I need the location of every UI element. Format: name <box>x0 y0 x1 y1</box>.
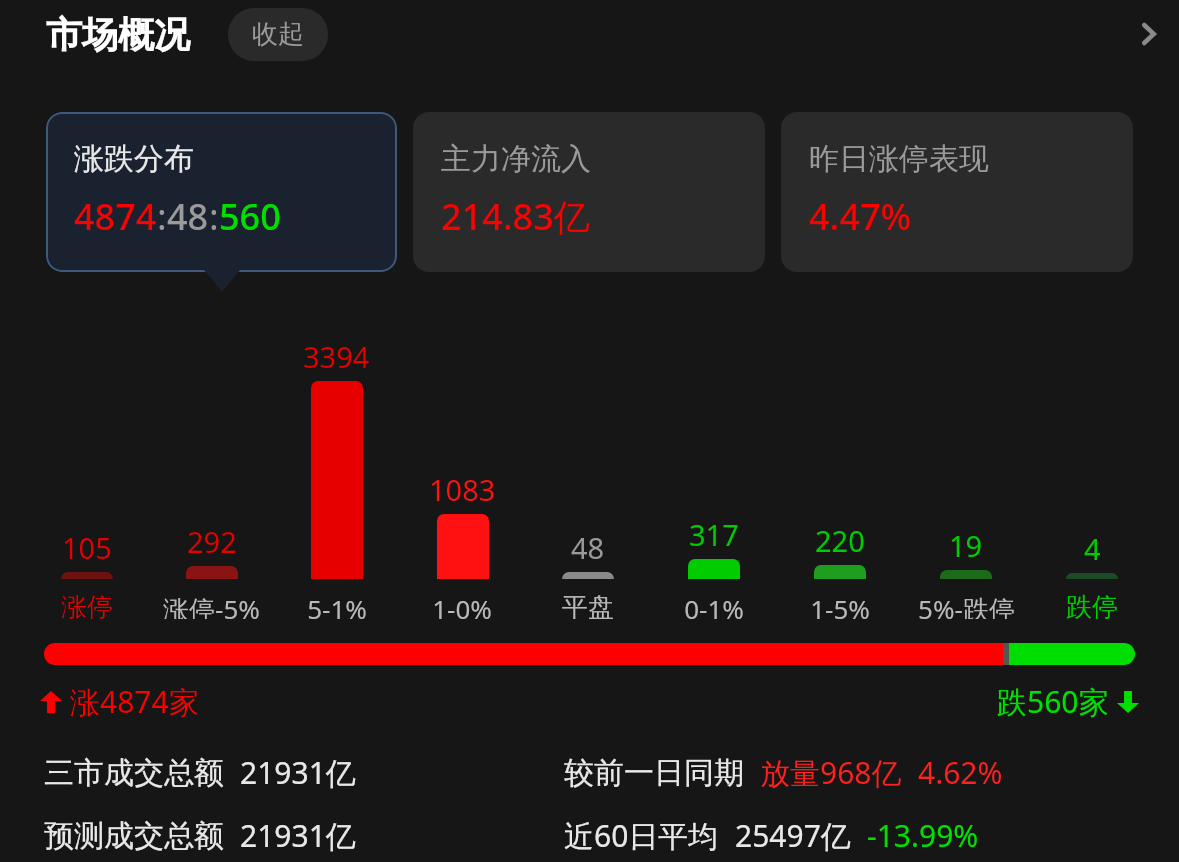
staticText: 近60日平均 <box>564 815 719 856</box>
staticText: 主力净流入 <box>441 140 591 178</box>
staticText: 平盘 <box>562 591 614 619</box>
staticText: 5%-跌停 <box>918 591 1015 619</box>
button[interactable]: 昨日涨停表现 <box>781 112 1133 272</box>
button[interactable]: 收起 <box>228 8 328 61</box>
staticText: 21931亿 <box>240 752 356 793</box>
staticText: 1-5% <box>810 591 870 619</box>
button[interactable]: 涨跌分布 <box>46 112 397 272</box>
staticText: : <box>209 192 219 241</box>
staticText: 4.62% <box>918 752 1003 793</box>
staticText: 市场概况 <box>46 12 190 57</box>
staticText: 4.47% <box>809 192 912 241</box>
staticText: 317 <box>689 515 739 554</box>
staticText: 预测成交总额 <box>44 817 224 855</box>
staticText: 4874 <box>74 192 157 241</box>
staticText: 三市成交总额 <box>44 754 224 792</box>
staticText: 跌560家 <box>997 681 1109 722</box>
staticText: 涨停-5% <box>163 591 260 619</box>
staticText: 1083 <box>429 470 496 509</box>
staticText: 19 <box>949 526 983 565</box>
staticText: 涨停 <box>61 591 113 619</box>
staticText: 收起 <box>252 18 304 51</box>
staticText: 5-1% <box>307 591 367 619</box>
staticText: 涨4874家 <box>70 681 199 722</box>
staticText: 560 <box>219 192 281 241</box>
staticText: 4 <box>1084 529 1101 568</box>
staticText: 48 <box>571 528 605 567</box>
staticText: 涨跌分布 <box>74 140 194 178</box>
staticText: 较前一日同期 <box>564 754 744 792</box>
staticText: 21931亿 <box>240 815 356 856</box>
staticText: 放量968亿 <box>760 752 902 793</box>
staticText: : <box>157 192 167 241</box>
staticText: -13.99% <box>867 815 979 856</box>
button[interactable]: More <box>1119 4 1179 64</box>
staticText: 220 <box>815 521 865 560</box>
staticText: 跌停 <box>1066 591 1118 619</box>
staticText: 0-1% <box>684 591 744 619</box>
staticText: 48 <box>167 192 209 241</box>
staticText: 昨日涨停表现 <box>809 140 989 178</box>
staticText: 25497亿 <box>735 815 851 856</box>
staticText: 214.83亿 <box>441 192 590 241</box>
staticText: 3394 <box>303 337 370 376</box>
staticText: 105 <box>62 528 112 567</box>
staticText: 292 <box>187 522 237 561</box>
staticText: 1-0% <box>432 591 492 619</box>
button[interactable]: 主力净流入 <box>413 112 765 272</box>
